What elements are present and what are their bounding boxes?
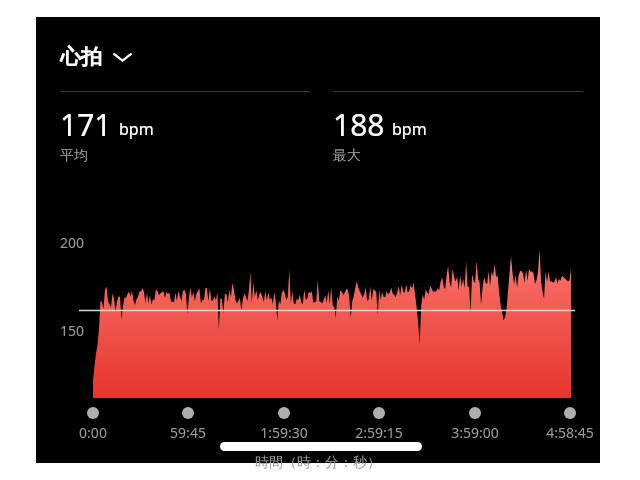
staticText: 最大: [333, 147, 361, 165]
staticText: 2:59:15: [355, 423, 403, 442]
staticText: 0:00: [79, 423, 107, 442]
staticText: 59:45: [170, 423, 206, 442]
button[interactable]: 171: [60, 91, 310, 165]
staticText: 1:59:30: [260, 423, 308, 442]
staticText: 188: [333, 104, 385, 145]
staticText: 4:58:45: [546, 423, 594, 442]
staticText: 200: [60, 233, 85, 252]
staticText: 時間（時：分：秒）: [255, 454, 381, 472]
staticText: 平均: [60, 147, 88, 165]
button[interactable]: 心拍 metric selector: [58, 41, 134, 73]
staticText: 3:59:00: [451, 423, 499, 442]
staticText: 171: [60, 104, 112, 145]
staticText: 心拍: [60, 44, 102, 70]
staticText: 150: [60, 321, 85, 340]
staticText: bpm: [119, 118, 154, 140]
button[interactable]: 188: [333, 91, 583, 165]
staticText: bpm: [392, 118, 427, 140]
